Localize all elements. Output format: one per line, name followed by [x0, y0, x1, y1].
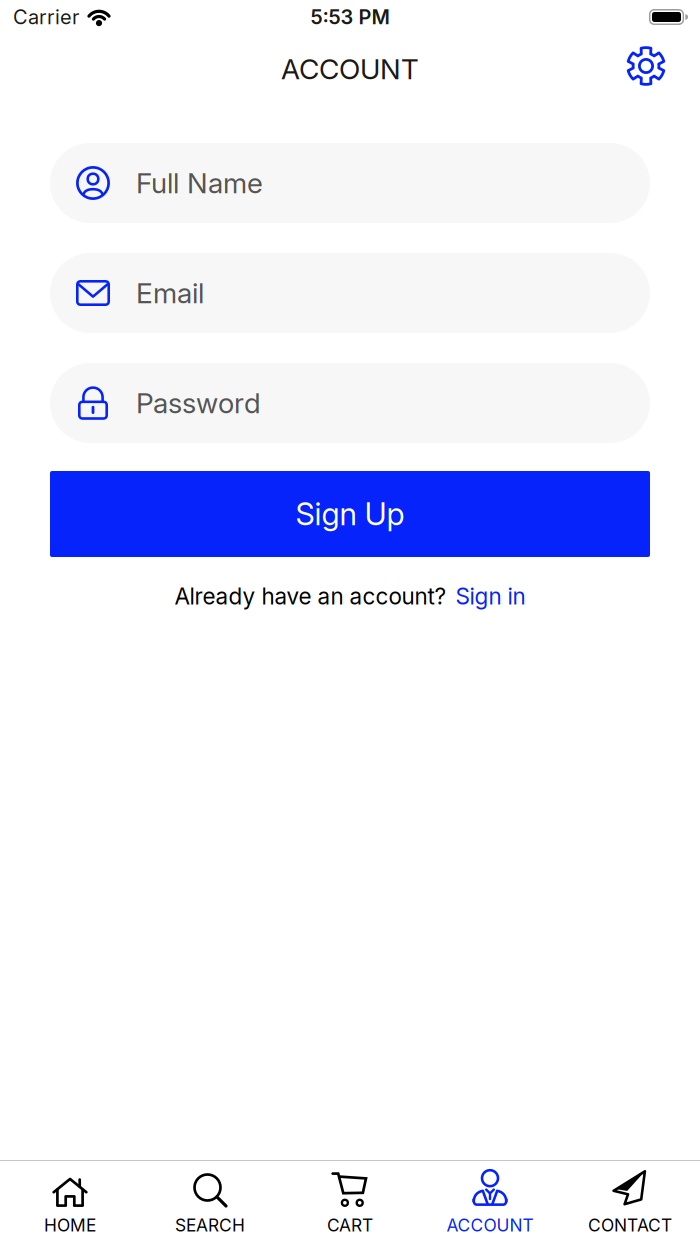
button[interactable]: Settings: [627, 47, 665, 85]
staticText: SEARCH: [175, 1215, 245, 1235]
button[interactable]: ACCOUNT: [420, 1156, 560, 1244]
button[interactable]: Full Name: [50, 143, 650, 223]
staticText: Sign Up: [295, 496, 404, 532]
staticText: CART: [327, 1215, 373, 1235]
staticText: Carrier: [13, 5, 79, 29]
button[interactable]: CONTACT: [560, 1156, 700, 1244]
button[interactable]: Email: [50, 253, 650, 333]
staticText: CONTACT: [588, 1215, 672, 1235]
staticText: 5:53 PM: [310, 5, 389, 29]
button[interactable]: HOME: [0, 1156, 140, 1244]
button[interactable]: Sign Up: [50, 471, 650, 557]
button[interactable]: Sign in: [455, 583, 525, 610]
staticText: Full Name: [136, 166, 263, 199]
button[interactable]: SEARCH: [140, 1156, 280, 1244]
button[interactable]: CART: [280, 1156, 420, 1244]
staticText: Password: [136, 386, 261, 419]
staticText: HOME: [44, 1215, 96, 1235]
staticText: Already have an account?: [174, 583, 446, 610]
button[interactable]: Password: [50, 363, 650, 443]
staticText: Email: [136, 276, 204, 309]
staticText: ACCOUNT: [281, 52, 419, 85]
staticText: Sign in: [455, 583, 525, 610]
staticText: ACCOUNT: [446, 1215, 533, 1235]
